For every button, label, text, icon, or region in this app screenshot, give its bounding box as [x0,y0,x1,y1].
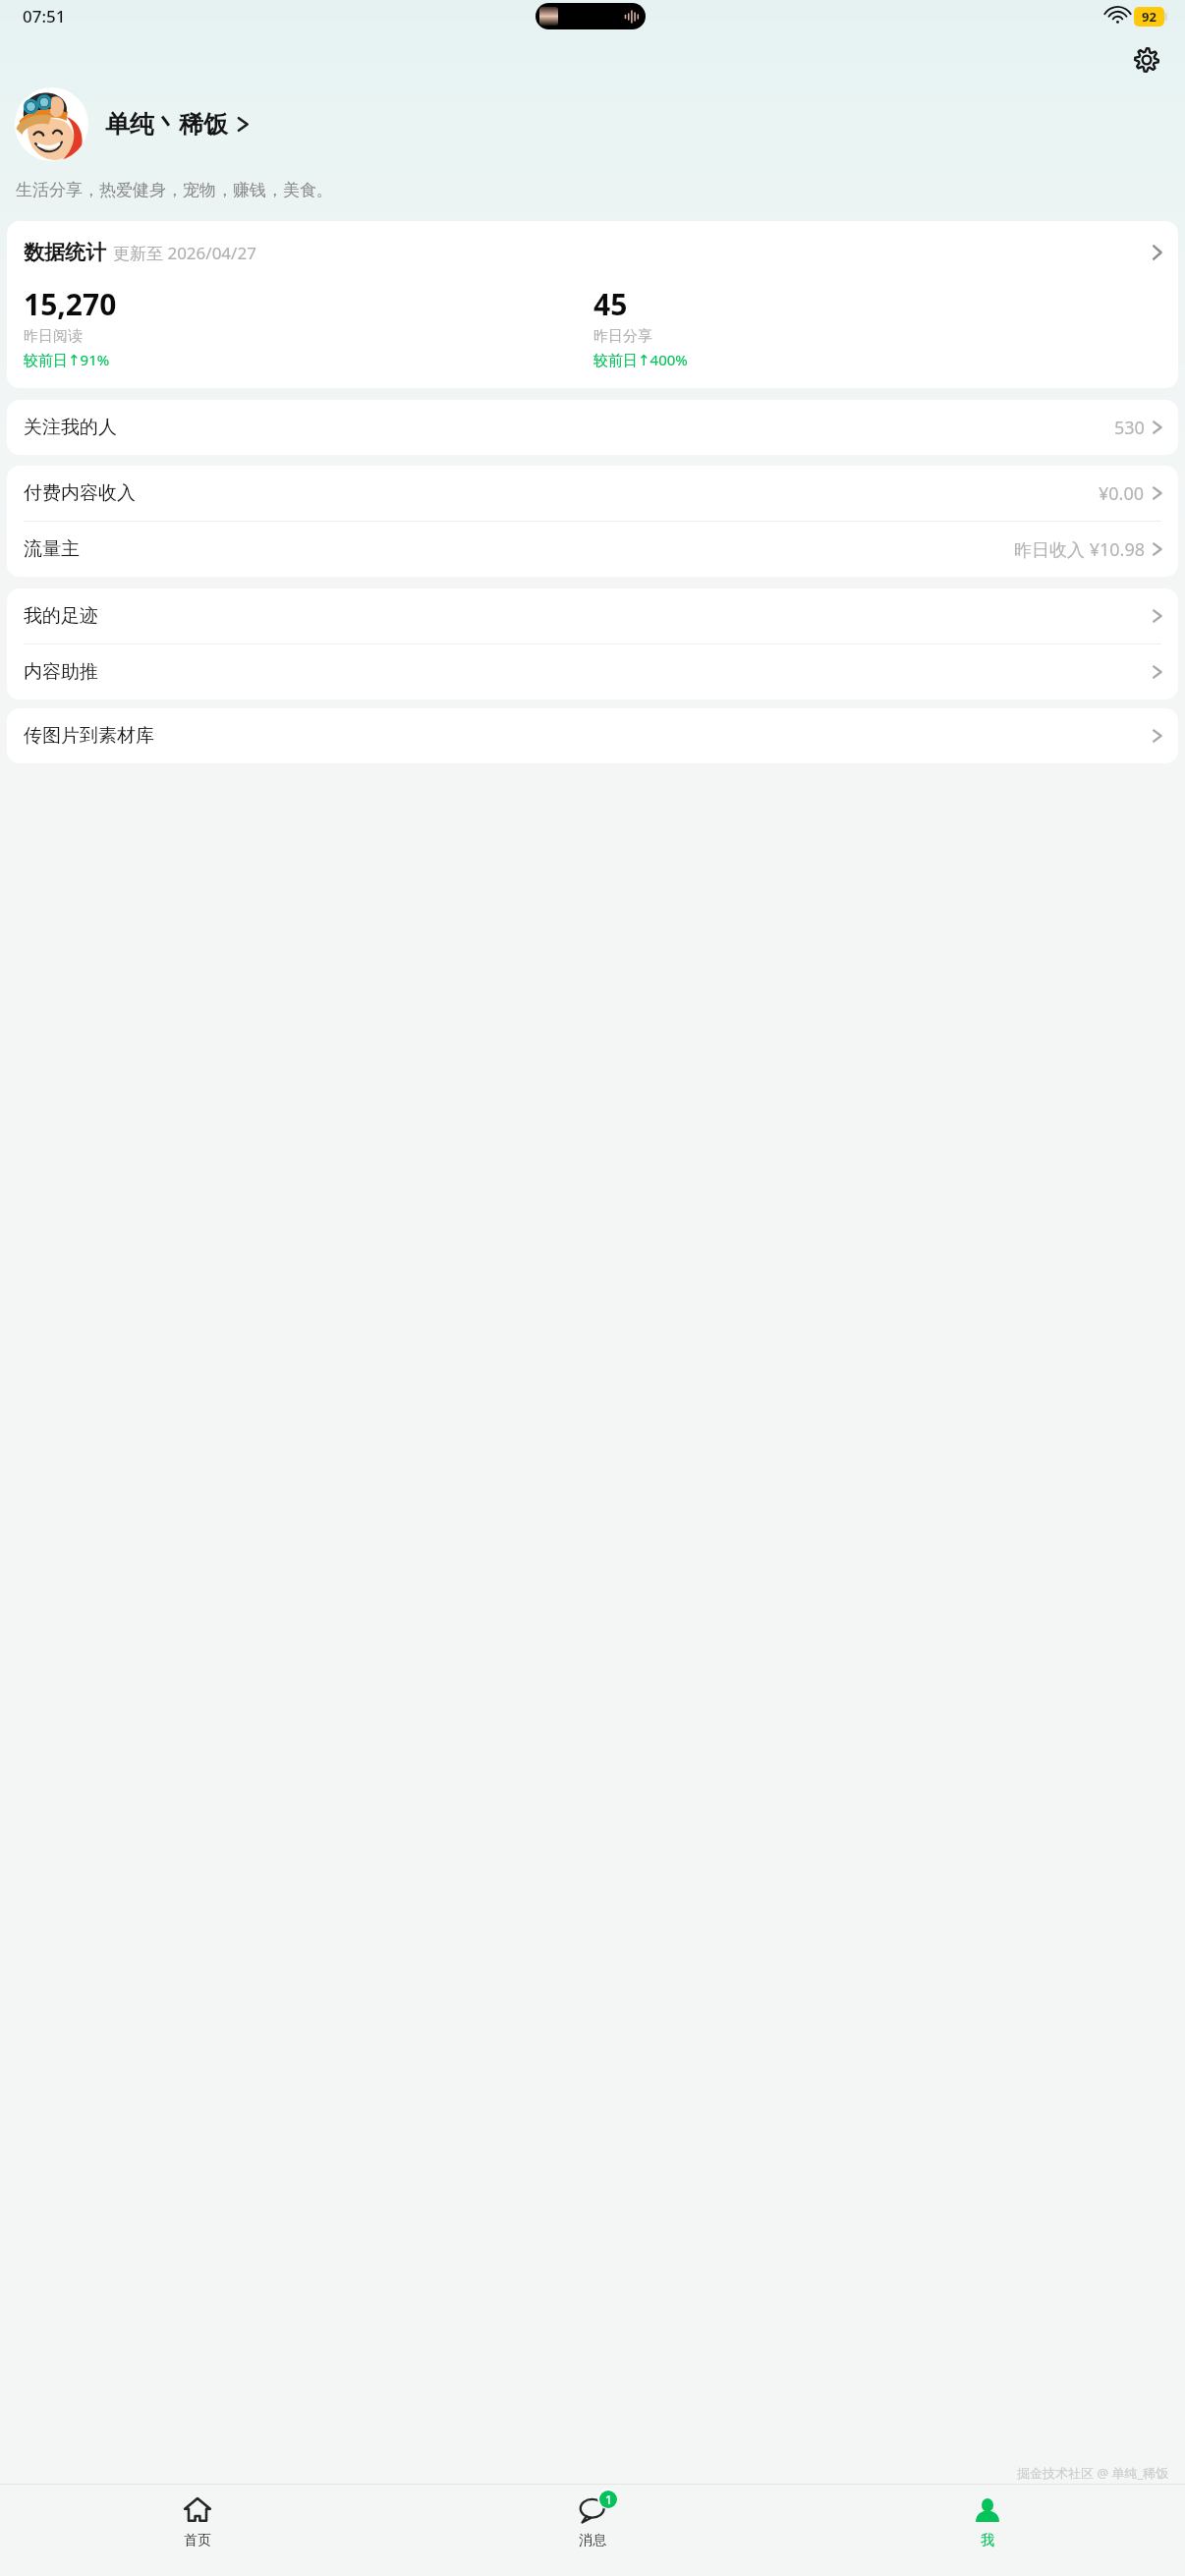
staticText: 传图片到素材库 [24,724,154,748]
staticText: 掘金技术社区 @ 单纯_稀饭 [1017,2464,1169,2482]
staticText: 生活分享，热爱健身，宠物，赚钱，美食。 [16,180,333,200]
button[interactable]: 数据统计 [7,221,1178,388]
button[interactable]: Settings [1126,39,1167,81]
staticText: 昨日阅读 [24,327,83,346]
button[interactable]: 关注我的人 [7,400,1178,455]
button[interactable]: 内容助推 [7,644,1178,700]
staticText: ¥0.00 [1099,481,1145,506]
button[interactable]: 1 [395,2485,790,2567]
staticText: 我 [981,2532,994,2549]
button[interactable]: 首页 [0,2485,395,2567]
staticText: 单纯丶稀饭 [105,109,228,140]
staticText: 92 [1142,8,1157,26]
staticText: 更新至 2026/04/27 [113,242,256,264]
staticText: 1 [605,2492,612,2507]
button[interactable]: 传图片到素材库 [7,708,1178,763]
staticText: 关注我的人 [24,416,117,439]
button[interactable]: 付费内容收入 [7,466,1178,521]
staticText: 昨日分享 [593,327,652,346]
staticText: 较前日↑400% [593,350,688,369]
button[interactable]: 我 [790,2485,1185,2567]
staticText: 数据统计 [24,240,106,265]
staticText: 较前日↑91% [24,350,110,369]
button[interactable]: 流量主 [7,522,1178,577]
staticText: 消息 [579,2532,606,2549]
staticText: 15,270 [24,284,117,324]
staticText: 我的足迹 [24,604,98,628]
button[interactable]: 我的足迹 [7,588,1178,644]
staticText: 07:51 [23,5,66,28]
staticText: 昨日收入 ¥10.98 [1014,537,1145,562]
staticText: 流量主 [24,537,80,561]
staticText: 首页 [184,2532,211,2549]
button[interactable]: 单纯丶稀饭 [15,87,1169,161]
staticText: 530 [1114,416,1145,440]
staticText: 付费内容收入 [24,481,136,505]
staticText: 45 [593,284,628,324]
staticText: 内容助推 [24,660,98,684]
